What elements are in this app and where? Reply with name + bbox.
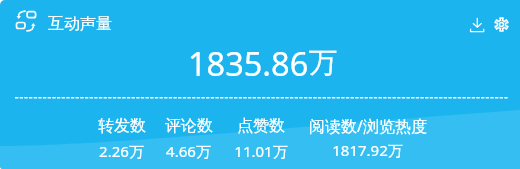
staticText: 点赞数 (237, 116, 285, 136)
staticText: 万 (309, 45, 338, 81)
button[interactable]: 阅读数/浏览热度 (307, 115, 428, 162)
button[interactable]: 互动声量 (8, 5, 138, 37)
staticText: 11.01万 (234, 141, 288, 161)
button[interactable]: 转发数 (96, 116, 147, 161)
staticText: 4.66万 (166, 141, 211, 161)
button[interactable]: 点赞数 (234, 116, 288, 161)
staticText: 评论数 (165, 116, 213, 136)
staticText: 阅读数/浏览热度 (309, 115, 427, 137)
button[interactable]: Download (463, 11, 491, 39)
staticText: 1835.86 (188, 41, 309, 79)
staticText: 1817.92万 (332, 140, 403, 160)
staticText: 互动声量 (48, 14, 112, 34)
staticText: 2.26万 (99, 141, 144, 161)
button[interactable]: 评论数 (163, 116, 214, 161)
button[interactable]: Settings (487, 10, 515, 38)
staticText: 转发数 (98, 116, 146, 136)
